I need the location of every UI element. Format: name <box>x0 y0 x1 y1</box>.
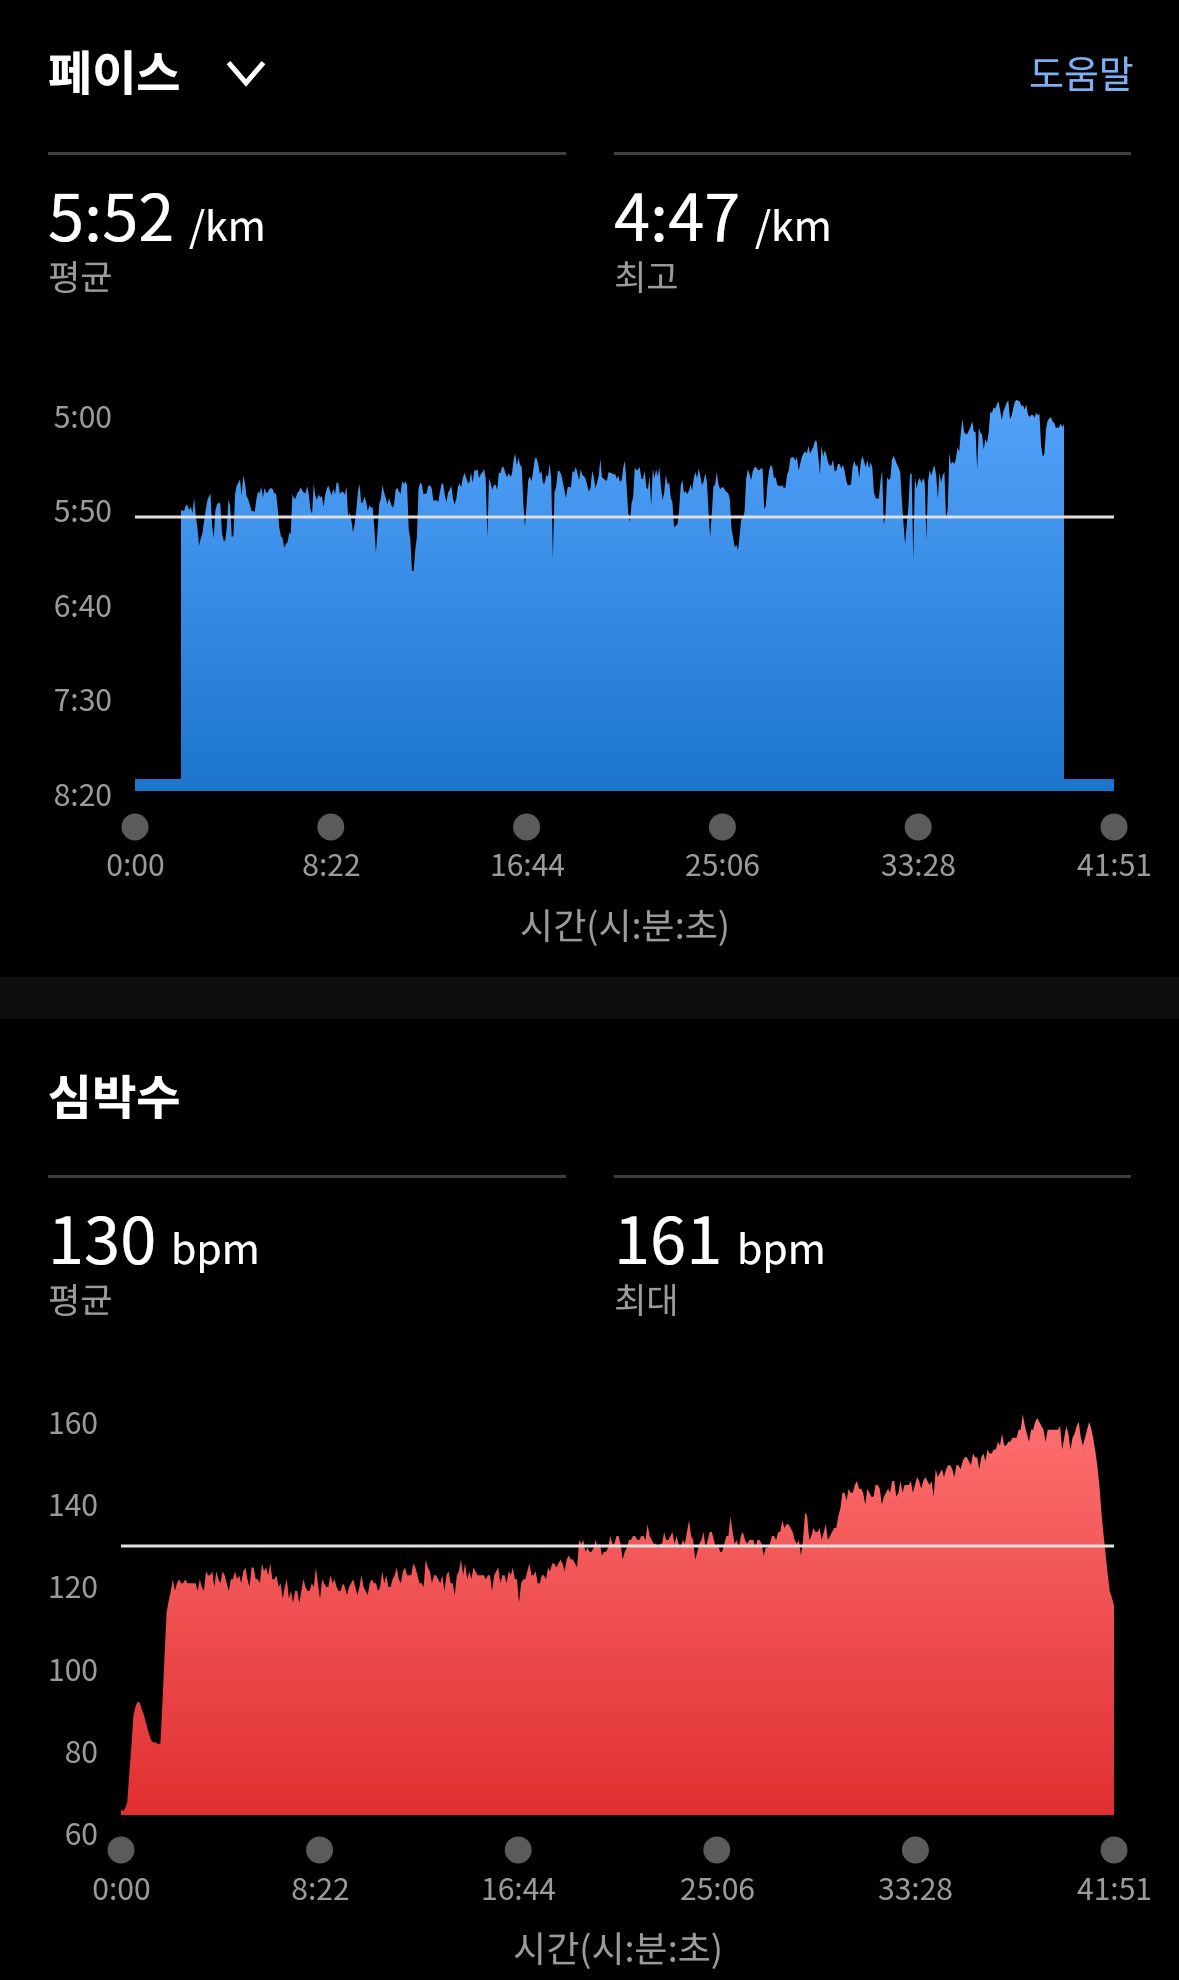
staticText: 최대 <box>614 1272 679 1323</box>
staticText: 평균 <box>48 1272 113 1323</box>
staticText: 시간(시:분:초) <box>520 897 730 949</box>
staticText: 8:22 <box>302 841 361 884</box>
staticText: /km <box>755 193 832 252</box>
staticText: 140 <box>48 1481 98 1524</box>
other: Change metric <box>226 56 266 84</box>
staticText: 평균 <box>48 249 113 300</box>
staticText: 16:44 <box>481 1865 556 1908</box>
button[interactable]: 4:47 <box>614 152 1131 311</box>
staticText: 5:00 <box>53 393 112 436</box>
button[interactable]: 161 <box>614 1175 1131 1334</box>
staticText: 7:30 <box>53 676 112 719</box>
button[interactable]: 130 <box>48 1175 566 1334</box>
button[interactable]: 페이스 <box>48 35 266 105</box>
staticText: 페이스 <box>48 35 181 105</box>
staticText: 41:51 <box>1077 841 1152 884</box>
staticText: 최고 <box>614 249 679 300</box>
staticText: 160 <box>48 1399 98 1442</box>
staticText: 100 <box>48 1646 98 1689</box>
staticText: 5:52 <box>48 166 175 260</box>
staticText: 33:28 <box>878 1865 953 1908</box>
staticText: 120 <box>48 1563 98 1606</box>
staticText: bpm <box>171 1216 260 1275</box>
staticText: 33:28 <box>881 841 956 884</box>
staticText: /km <box>189 193 266 252</box>
staticText: 60 <box>64 1810 98 1853</box>
staticText: 0:00 <box>106 841 165 884</box>
button[interactable]: 심박수 <box>48 1059 181 1129</box>
staticText: 25:06 <box>680 1865 755 1908</box>
button[interactable]: 5:52 <box>48 152 566 311</box>
staticText: 4:47 <box>614 166 741 260</box>
staticText: 6:40 <box>53 582 112 625</box>
staticText: 16:44 <box>490 841 565 884</box>
staticText: bpm <box>737 1216 826 1275</box>
staticText: 5:50 <box>53 487 112 530</box>
button[interactable]: 도움말 <box>1029 44 1134 99</box>
staticText: 130 <box>48 1189 157 1283</box>
staticText: 161 <box>614 1189 723 1283</box>
staticText: 도움말 <box>1029 44 1134 99</box>
staticText: 80 <box>64 1728 98 1771</box>
staticText: 심박수 <box>48 1059 181 1129</box>
staticText: 시간(시:분:초) <box>513 1920 723 1972</box>
staticText: 41:51 <box>1077 1865 1152 1908</box>
staticText: 25:06 <box>685 841 760 884</box>
staticText: 8:22 <box>291 1865 350 1908</box>
staticText: 0:00 <box>92 1865 151 1908</box>
staticText: 8:20 <box>53 771 112 814</box>
